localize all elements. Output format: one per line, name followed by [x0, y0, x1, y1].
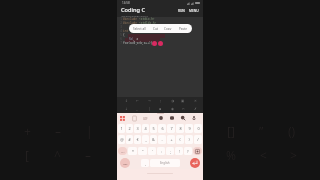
staticText: |	[86, 123, 93, 139]
button[interactable]: 0	[194, 124, 202, 133]
button[interactable]: symbol	[134, 98, 140, 104]
button[interactable]: Clipboard	[131, 115, 137, 121]
staticText: ()	[288, 123, 296, 139]
button[interactable]: 9	[185, 124, 193, 133]
staticText: ✗	[194, 107, 197, 111]
button[interactable]: =\<	[118, 147, 127, 155]
button[interactable]: symbol	[157, 98, 163, 104]
button[interactable]: ABC	[120, 158, 130, 168]
button[interactable]: Keyboard layouts	[119, 115, 125, 121]
button[interactable]: symbol	[180, 98, 186, 104]
button[interactable]: 8	[176, 124, 184, 133]
button[interactable]: Voice input	[191, 115, 197, 121]
button[interactable]: *	[128, 147, 137, 155]
button[interactable]: "	[138, 147, 147, 155]
button[interactable]: Translate	[180, 115, 186, 121]
button[interactable]: ,	[141, 159, 149, 167]
button[interactable]: symbol	[123, 106, 129, 112]
staticText: *	[132, 149, 134, 154]
staticText	[123, 37, 129, 41]
button[interactable]: symbol	[123, 98, 129, 104]
button[interactable]: symbol	[146, 98, 152, 104]
staticText: ↓	[125, 107, 128, 111]
staticText: /	[197, 137, 199, 142]
staticText: /sdcard/CodingC/main.c	[121, 14, 149, 17]
staticText: ?	[187, 149, 189, 154]
staticText: 7	[118, 41, 122, 45]
button[interactable]: #	[126, 135, 133, 144]
button[interactable]: symbol	[146, 106, 152, 112]
button[interactable]: )	[185, 135, 193, 144]
button[interactable]: symbol	[169, 106, 175, 112]
button[interactable]: GIF	[142, 115, 149, 122]
button[interactable]: 5	[150, 124, 157, 133]
staticText: 1	[118, 17, 122, 21]
button[interactable]: Paste	[178, 24, 188, 33]
button[interactable]: MENU	[187, 6, 201, 16]
button[interactable]: Emoji	[158, 115, 164, 121]
button[interactable]: symbol	[180, 106, 186, 112]
button[interactable]: Copy	[163, 24, 173, 33]
staticText: 9	[188, 126, 191, 131]
button[interactable]: /	[194, 135, 202, 144]
staticText: ABC	[123, 162, 128, 165]
staticText: 5	[118, 33, 122, 37]
button[interactable]: €	[134, 135, 141, 144]
staticText: ,	[145, 161, 146, 166]
button[interactable]: Cut	[152, 24, 159, 33]
button[interactable]: ;	[166, 147, 174, 155]
button[interactable]: symbol	[169, 98, 175, 104]
staticText: Select all	[133, 27, 146, 30]
staticText: –	[55, 123, 62, 139]
button[interactable]: Enter	[190, 158, 200, 168]
button[interactable]: symbol	[192, 106, 198, 112]
staticText: 6	[118, 37, 122, 41]
staticText: ◑	[171, 99, 174, 103]
button[interactable]: symbol	[134, 106, 140, 112]
staticText: English	[160, 161, 170, 165]
button[interactable]: symbol	[192, 98, 198, 104]
button[interactable]: 1	[118, 124, 125, 133]
button[interactable]: Backspace	[193, 147, 202, 155]
button[interactable]: !	[175, 147, 183, 155]
button[interactable]: @	[118, 135, 125, 144]
button[interactable]: :	[157, 147, 165, 155]
staticText: 4	[118, 29, 122, 33]
staticText: 2	[118, 21, 122, 25]
staticText: Paste	[179, 27, 187, 30]
button[interactable]: 2	[126, 124, 133, 133]
button[interactable]: +	[167, 135, 175, 144]
button[interactable]: 7	[167, 124, 175, 133]
button[interactable]: Stickers	[169, 115, 175, 121]
button[interactable]: English	[150, 159, 180, 167]
button[interactable]: 3	[134, 124, 141, 133]
staticText: GIF	[143, 117, 148, 121]
button[interactable]: _	[142, 135, 149, 144]
staticText: #include	[123, 21, 137, 25]
button[interactable]: '	[148, 147, 156, 155]
staticText: ▣	[181, 99, 185, 103]
button[interactable]: ?	[184, 147, 192, 155]
staticText: , a	[133, 37, 139, 41]
button[interactable]: 6	[158, 124, 166, 133]
button[interactable]: Select all	[132, 24, 147, 33]
button[interactable]: RUN	[176, 6, 187, 16]
button[interactable]: (	[176, 135, 184, 144]
staticText: "	[142, 149, 144, 154]
button[interactable]: symbol	[157, 106, 163, 112]
button[interactable]: -	[158, 135, 166, 144]
staticText: []	[227, 123, 235, 139]
button[interactable]: 4	[142, 124, 149, 133]
staticText: 8	[179, 126, 182, 131]
staticText: ;	[170, 149, 171, 154]
staticText: '	[152, 149, 153, 154]
staticText: 1	[120, 126, 123, 131]
staticText: #include	[123, 17, 137, 21]
staticText: %d	[129, 37, 133, 41]
staticText: Copy	[164, 27, 172, 30]
staticText: int	[123, 29, 129, 33]
staticText: ←	[136, 99, 139, 103]
button[interactable]: &	[150, 135, 157, 144]
staticText: #	[128, 137, 131, 142]
staticText: →	[148, 99, 151, 103]
